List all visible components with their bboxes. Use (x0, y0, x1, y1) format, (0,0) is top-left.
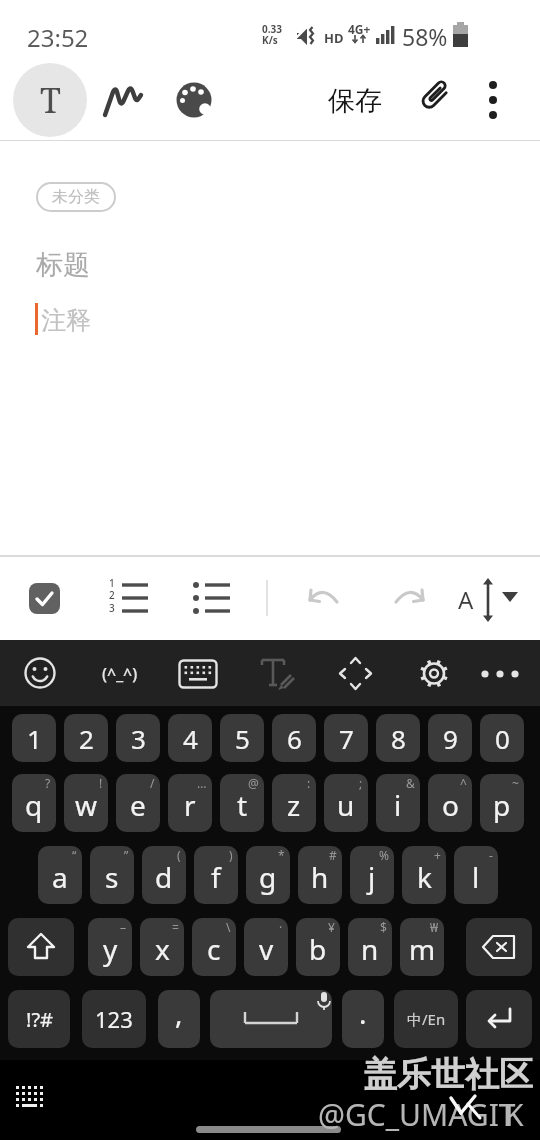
staticText: ” (124, 847, 129, 863)
staticText: - (489, 847, 493, 863)
staticText: T (40, 77, 61, 123)
button[interactable]: 1 2 3 (106, 578, 150, 622)
button[interactable]: 7 (324, 714, 368, 762)
button[interactable]: u (324, 774, 368, 832)
staticText: b (309, 930, 327, 968)
button[interactable]: 2 (64, 714, 108, 762)
button[interactable]: q (12, 774, 56, 832)
button[interactable]: n (348, 918, 392, 976)
button[interactable]: v (244, 918, 288, 976)
staticText: u (337, 786, 355, 824)
staticText: f (211, 858, 221, 896)
button[interactable]: 8 (376, 714, 420, 762)
button[interactable]: 0 (480, 714, 524, 762)
staticText: 注释 (41, 305, 91, 336)
staticText: a (52, 858, 68, 896)
button[interactable]: (^_^) (92, 655, 148, 693)
button[interactable]: g (246, 846, 290, 904)
button[interactable] (10, 1078, 54, 1118)
staticText: * (278, 847, 285, 863)
button[interactable]: . (342, 990, 384, 1048)
staticText: “ (72, 847, 77, 863)
staticText: 4G+ (348, 21, 371, 37)
button[interactable]: w (64, 774, 108, 832)
button[interactable] (178, 659, 220, 689)
button[interactable]: 9 (428, 714, 472, 762)
button[interactable] (337, 655, 375, 693)
button[interactable]: r (168, 774, 212, 832)
staticText: t (237, 786, 248, 824)
staticText: 6 (287, 721, 302, 756)
staticText: = (172, 919, 179, 935)
button[interactable]: !?# (8, 990, 70, 1048)
button[interactable]: m (400, 918, 444, 976)
button[interactable]: k (402, 846, 446, 904)
button[interactable] (210, 990, 332, 1048)
button[interactable]: s (90, 846, 134, 904)
staticText: … (197, 775, 207, 791)
staticText: !?# (26, 1006, 53, 1033)
button[interactable]: i (376, 774, 420, 832)
button[interactable]: f (194, 846, 238, 904)
button[interactable] (303, 582, 345, 616)
button[interactable] (102, 80, 146, 124)
staticText: · (279, 919, 283, 935)
button[interactable] (388, 582, 430, 616)
staticText: h (311, 858, 329, 896)
button[interactable] (8, 918, 74, 976)
button[interactable] (22, 655, 60, 693)
staticText: w (75, 786, 98, 824)
button[interactable]: a (38, 846, 82, 904)
button[interactable]: y (88, 918, 132, 976)
button[interactable]: 6 (272, 714, 316, 762)
staticText: ^ (460, 775, 467, 791)
button[interactable]: h (298, 846, 342, 904)
button[interactable] (415, 655, 453, 693)
button[interactable]: 中/En (394, 990, 458, 1048)
staticText: ( (177, 847, 181, 863)
button[interactable]: T (13, 63, 87, 137)
staticText: : (307, 775, 311, 791)
button[interactable]: l (454, 846, 498, 904)
button[interactable] (466, 918, 532, 976)
staticText: k (417, 858, 432, 896)
button[interactable]: x (140, 918, 184, 976)
staticText: / (150, 775, 155, 791)
button[interactable] (190, 578, 232, 620)
staticText: z (287, 786, 301, 824)
button[interactable] (466, 990, 532, 1048)
button[interactable] (472, 655, 528, 693)
button[interactable] (475, 72, 511, 128)
staticText: p (493, 786, 511, 824)
staticText: g (259, 858, 277, 896)
button[interactable]: t (220, 774, 264, 832)
button[interactable]: o (428, 774, 472, 832)
staticText: K (505, 1094, 524, 1135)
button[interactable]: e (116, 774, 160, 832)
button[interactable]: 4 (168, 714, 212, 762)
button[interactable]: j (350, 846, 394, 904)
button[interactable] (29, 583, 60, 614)
button[interactable]: z (272, 774, 316, 832)
button[interactable]: c (192, 918, 236, 976)
button[interactable]: 123 (82, 990, 146, 1048)
button[interactable]: 未分类 (36, 182, 116, 212)
staticText: 0.33 K/s (262, 22, 282, 47)
button[interactable] (172, 79, 218, 125)
button[interactable] (412, 77, 457, 122)
button[interactable]: 1 (12, 714, 56, 762)
button[interactable]: d (142, 846, 186, 904)
button[interactable]: 5 (220, 714, 264, 762)
button[interactable]: p (480, 774, 524, 832)
button[interactable]: , (158, 990, 200, 1048)
staticText: 3 (131, 721, 146, 756)
button[interactable]: 保存 (315, 78, 395, 123)
button[interactable]: 3 (116, 714, 160, 762)
button[interactable]: b (296, 918, 340, 976)
staticText: % (379, 847, 389, 863)
staticText: . (359, 994, 367, 1032)
staticText: 8 (391, 721, 406, 756)
button[interactable] (259, 655, 299, 695)
staticText: 5 (235, 721, 250, 756)
button[interactable]: A (455, 576, 525, 622)
